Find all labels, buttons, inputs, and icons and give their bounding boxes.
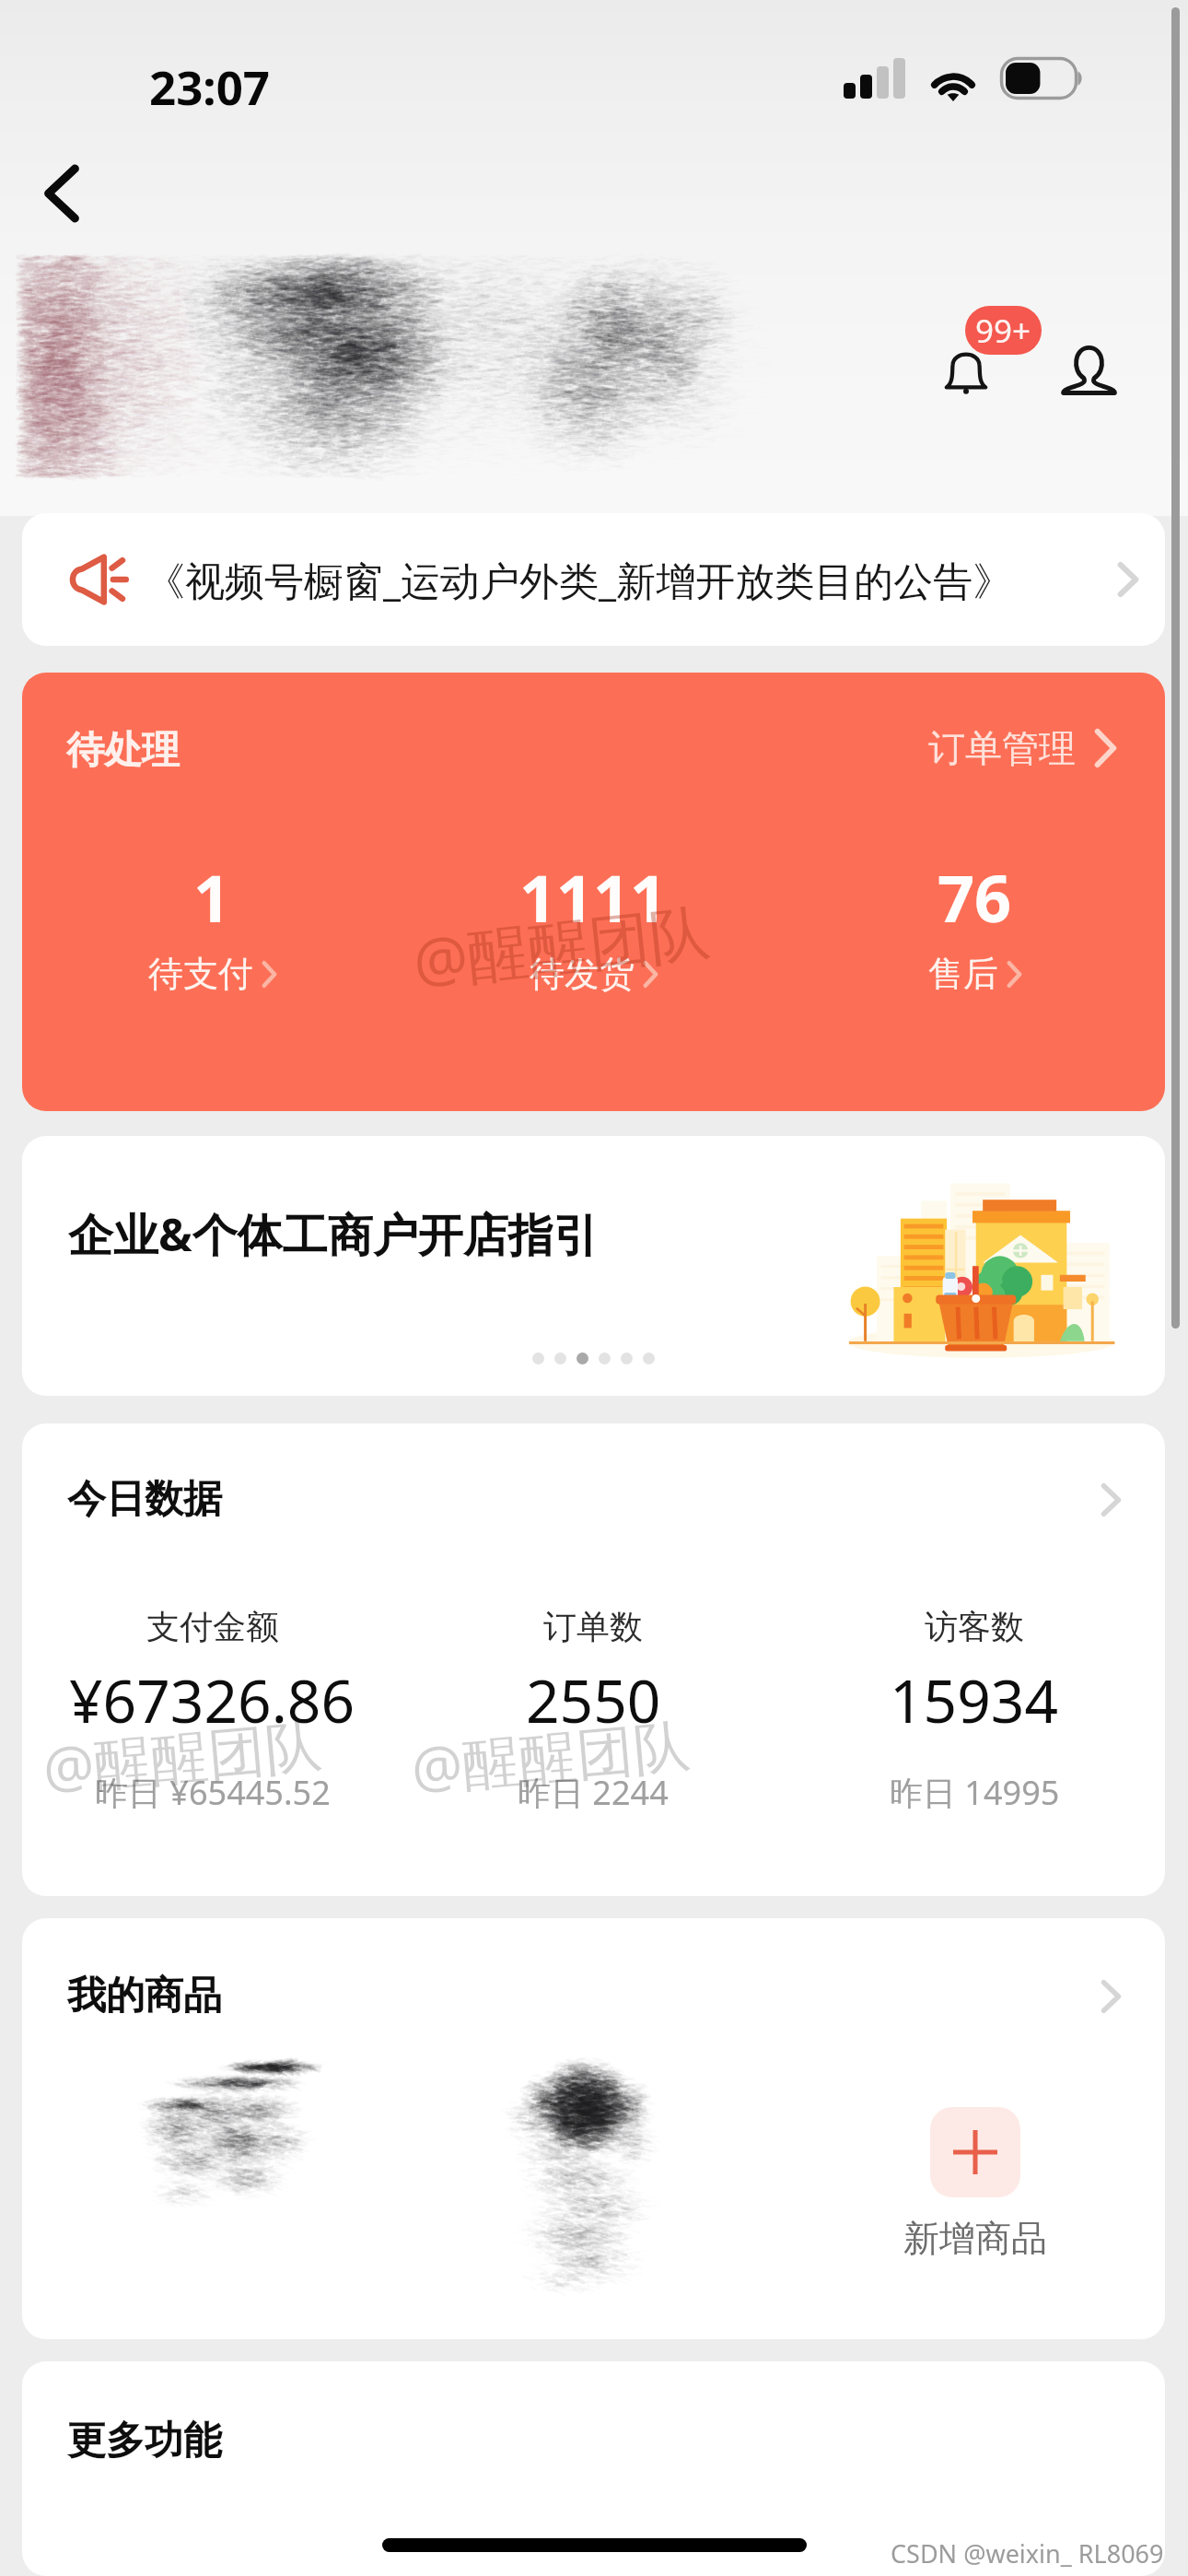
button[interactable]: 76 (784, 853, 1165, 996)
staticText: 昨日 ¥65445.52 (95, 1770, 331, 1815)
staticText: 昨日 14995 (890, 1770, 1060, 1815)
staticText: 今日数据 (67, 1475, 222, 1524)
staticText: ¥67326.86 (69, 1660, 355, 1740)
button[interactable]: Product 1 (87, 2038, 344, 2250)
button[interactable]: Profile (1046, 328, 1131, 411)
staticText: 订单管理 (928, 725, 1076, 771)
staticText: 新增商品 (903, 2216, 1047, 2261)
staticText: 支付金额 (146, 1606, 279, 1647)
button[interactable]: 《视频号橱窗_运动户外类_新增开放类目的公告》 (22, 513, 1165, 646)
button[interactable]: 我的商品 (67, 1972, 1121, 2020)
staticText: 待处理 (66, 727, 180, 775)
button[interactable]: 今日数据 (67, 1475, 1121, 1524)
staticText: 76 (938, 853, 1012, 941)
staticText: 访客数 (925, 1606, 1024, 1647)
button[interactable]: Back (20, 152, 103, 235)
staticText: @醒醒团队 (409, 888, 714, 1001)
staticText: 15934 (890, 1660, 1059, 1740)
staticText: 待支付 (148, 952, 253, 996)
button[interactable]: 1111 (402, 853, 784, 996)
button[interactable]: Product 2 (437, 2043, 676, 2305)
staticText: 昨日 2244 (518, 1770, 669, 1815)
staticText: 2550 (526, 1660, 661, 1740)
staticText: 售后 (928, 952, 998, 996)
button[interactable]: 1 (22, 853, 402, 996)
staticText: CSDN @weixin_ RL8069 (891, 2536, 1164, 2570)
staticText: @醒醒团队 (408, 1704, 694, 1807)
staticText: 99+ (975, 309, 1031, 353)
staticText: 《视频号橱窗_运动户外类_新增开放类目的公告》 (146, 553, 1013, 607)
button[interactable]: 企业&个体工商户开店指引 (22, 1136, 1165, 1396)
staticText: 1111 (519, 853, 668, 941)
staticText: 待发货 (530, 952, 635, 996)
staticText: 订单数 (543, 1606, 643, 1647)
staticText: 更多功能 (67, 2417, 222, 2465)
button[interactable]: 新增商品 (883, 2107, 1067, 2261)
button[interactable]: Notifications (934, 297, 1054, 403)
staticText: 23:07 (149, 54, 271, 118)
staticText: @醒醒团队 (40, 1704, 325, 1807)
staticText: 1 (193, 853, 231, 941)
staticText: 我的商品 (67, 1972, 222, 2020)
staticText: 企业&个体工商户开店指引 (68, 1203, 599, 1265)
button[interactable]: 订单管理 (928, 725, 1116, 771)
